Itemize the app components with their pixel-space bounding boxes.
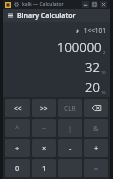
button[interactable]: = (84, 159, 108, 177)
staticText: 32 (85, 58, 100, 76)
staticText: = (94, 163, 99, 173)
staticText: ~ (42, 123, 47, 133)
staticText: 2 (103, 50, 106, 55)
staticText: 16 (101, 90, 106, 95)
button[interactable]: >> (32, 99, 56, 117)
button[interactable]: 0 (5, 159, 30, 177)
staticText: ^ (15, 123, 20, 133)
staticText: 10 (101, 70, 106, 75)
staticText: >> (40, 104, 48, 113)
staticText: << (14, 104, 22, 113)
staticText: 20 (85, 78, 100, 96)
button[interactable]: Close (100, 1, 107, 8)
button[interactable]: × (32, 139, 56, 157)
staticText: 1 (42, 163, 47, 173)
button[interactable]: Maximize (91, 1, 98, 8)
staticText: 100000 (57, 38, 102, 56)
staticText: | (68, 123, 73, 133)
button[interactable]: - (58, 139, 82, 157)
staticText: + (94, 143, 99, 153)
staticText: Binary Calculator (17, 11, 76, 21)
staticText: & (93, 123, 99, 133)
button[interactable]: | (58, 119, 82, 137)
button[interactable]: + (84, 139, 108, 157)
button[interactable]: Menu (7, 12, 14, 19)
staticText: 0 (15, 163, 20, 173)
button[interactable]: CLR (58, 99, 82, 117)
staticText: - (69, 143, 72, 153)
staticText: 1<<101 (83, 26, 106, 35)
staticText: kalk — Calculator (22, 1, 64, 8)
button[interactable]: ^ (5, 119, 30, 137)
button[interactable]: ~ (32, 119, 56, 137)
button[interactable]: ÷ (5, 139, 30, 157)
button[interactable]: 1 (32, 159, 56, 177)
button[interactable]: << (5, 99, 30, 117)
staticText: CLR (64, 104, 76, 113)
button[interactable]: Backspace (84, 99, 108, 117)
button[interactable]: & (84, 119, 108, 137)
staticText: × (42, 143, 47, 153)
staticText: ÷ (15, 143, 20, 153)
button[interactable]: Minimize (82, 1, 89, 8)
